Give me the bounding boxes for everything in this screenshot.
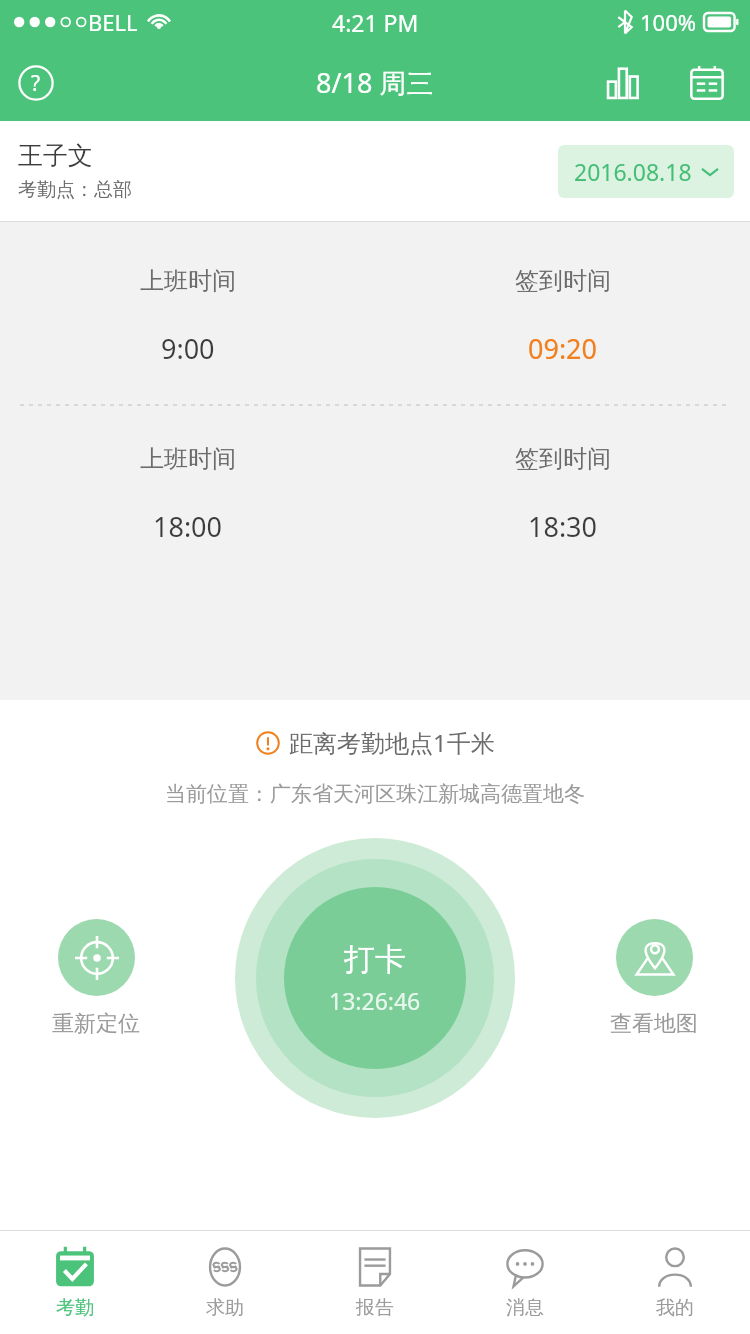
- staticText: 09:20: [528, 330, 598, 367]
- button[interactable]: Calendar: [678, 54, 736, 112]
- staticText: 8/18 周三: [316, 64, 434, 101]
- staticText: 18:00: [153, 508, 223, 545]
- staticText: 2016.08.18: [574, 156, 692, 187]
- staticText: 报告: [356, 1296, 394, 1320]
- staticText: 考勤点：总部: [18, 178, 132, 202]
- button[interactable]: 消息: [450, 1231, 600, 1334]
- staticText: 上班时间: [140, 266, 236, 296]
- button[interactable]: Statistics: [594, 54, 652, 112]
- staticText: 当前位置：广东省天河区珠江新城高德置地冬: [0, 781, 750, 807]
- staticText: 4:21 PM: [332, 7, 419, 38]
- staticText: 消息: [506, 1296, 544, 1320]
- staticText: 打卡: [344, 940, 406, 979]
- staticText: 求助: [206, 1296, 244, 1320]
- button[interactable]: 查看地图: [610, 919, 698, 1038]
- button[interactable]: 考勤: [0, 1231, 150, 1334]
- staticText: 100%: [640, 7, 697, 37]
- staticText: 上班时间: [140, 444, 236, 474]
- button[interactable]: 2016.08.18: [558, 145, 734, 198]
- button[interactable]: 求助: [150, 1231, 300, 1334]
- button[interactable]: 重新定位: [52, 919, 140, 1038]
- button[interactable]: 报告: [300, 1231, 450, 1334]
- button[interactable]: Help: [10, 57, 62, 109]
- staticText: ?: [31, 69, 41, 98]
- staticText: 王子文: [18, 140, 93, 171]
- staticText: 考勤: [56, 1296, 94, 1320]
- staticText: 查看地图: [610, 1010, 698, 1038]
- staticText: 18:30: [528, 508, 598, 545]
- staticText: 签到时间: [515, 444, 611, 474]
- button[interactable]: 我的: [600, 1231, 750, 1334]
- staticText: 距离考勤地点1千米: [289, 726, 495, 759]
- staticText: 签到时间: [515, 266, 611, 296]
- staticText: BELL: [88, 7, 138, 37]
- staticText: 9:00: [161, 330, 215, 367]
- staticText: 重新定位: [52, 1010, 140, 1038]
- staticText: 13:26:46: [329, 985, 421, 1016]
- button[interactable]: 打卡: [235, 838, 515, 1118]
- staticText: 我的: [656, 1296, 694, 1320]
